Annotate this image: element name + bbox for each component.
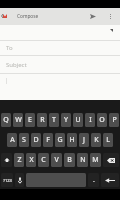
button[interactable]: A (7, 133, 17, 147)
staticText: D (33, 135, 39, 145)
staticText: N (80, 155, 86, 165)
button[interactable]: Send (88, 8, 104, 25)
button[interactable]: ?123 (1, 173, 13, 187)
staticText: U (75, 115, 81, 125)
button[interactable]: F (43, 133, 53, 147)
staticText: F (46, 135, 50, 145)
button[interactable]: G (55, 133, 65, 147)
button[interactable]: Subject (0, 56, 120, 73)
button[interactable]: I (85, 113, 95, 127)
staticText: E (28, 115, 32, 125)
staticText: J (83, 135, 85, 145)
button[interactable]: D (31, 133, 41, 147)
staticText: Subject (6, 61, 27, 69)
staticText: Compose (17, 13, 39, 20)
button[interactable]: P (109, 113, 119, 127)
button[interactable]: . (88, 173, 99, 187)
staticText: X (29, 155, 34, 165)
button[interactable]: R (37, 113, 47, 127)
staticText: . (93, 175, 95, 185)
staticText: T (52, 115, 56, 125)
staticText: K (94, 135, 99, 145)
staticText: S (22, 135, 26, 145)
staticText: H (69, 135, 75, 145)
staticText: A (10, 135, 15, 145)
button[interactable]: M (90, 153, 101, 167)
button[interactable]: Z (14, 153, 24, 167)
staticText: V (54, 155, 59, 165)
staticText: P (112, 115, 117, 125)
staticText: W (15, 115, 22, 125)
button[interactable] (0, 25, 120, 40)
button[interactable]: S (19, 133, 29, 147)
button[interactable]: Voice input (15, 173, 24, 187)
staticText: O (99, 115, 105, 125)
staticText: Z (17, 155, 22, 165)
button[interactable]: H (67, 133, 77, 147)
button[interactable]: O (97, 113, 107, 127)
staticText: ?123 (3, 178, 12, 183)
button[interactable]: K (91, 133, 101, 147)
staticText: C (41, 155, 46, 165)
staticText: M (92, 155, 99, 165)
button[interactable]: X (26, 153, 36, 167)
button[interactable]: C (38, 153, 49, 167)
staticText: R (40, 115, 45, 125)
staticText: Y (64, 115, 68, 125)
button[interactable]: L (103, 133, 113, 147)
button[interactable]: U (73, 113, 83, 127)
staticText: G (57, 135, 63, 145)
button[interactable]: More options (104, 8, 120, 25)
button[interactable]: Shift (1, 153, 12, 167)
staticText: B (67, 155, 72, 165)
button[interactable]: N (77, 153, 88, 167)
button[interactable]: Q (1, 113, 11, 127)
button[interactable]: To (0, 41, 120, 55)
button[interactable]: Enter (101, 173, 119, 187)
staticText: L (106, 135, 110, 145)
staticText: I (89, 115, 92, 125)
button[interactable]: W (13, 113, 23, 127)
button[interactable]: Backspace (103, 153, 119, 167)
button[interactable]: Back (0, 8, 4, 25)
button[interactable]: V (51, 153, 62, 167)
staticText: Q (3, 115, 9, 125)
button[interactable]: B (64, 153, 75, 167)
button[interactable]: J (79, 133, 89, 147)
button[interactable]: E (25, 113, 35, 127)
button[interactable]: Y (61, 113, 71, 127)
staticText: To (6, 44, 13, 52)
button[interactable]: T (49, 113, 59, 127)
